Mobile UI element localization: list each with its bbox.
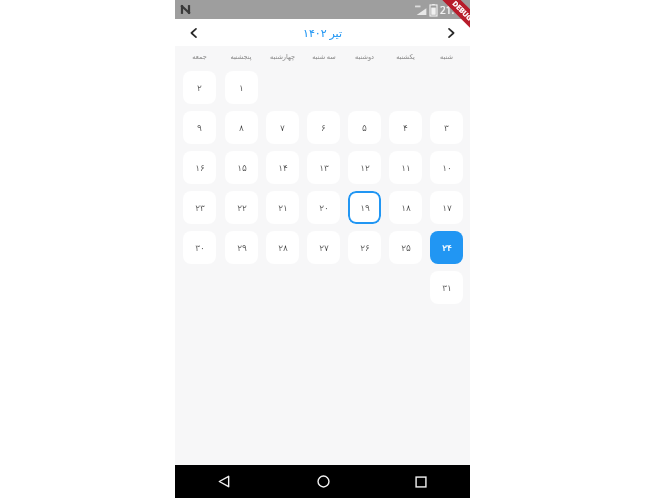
- button[interactable]: ۲۱: [266, 191, 299, 224]
- button[interactable]: ۲۵: [389, 231, 422, 264]
- button[interactable]: ۲۹: [225, 231, 258, 264]
- button[interactable]: ۳۱: [430, 271, 463, 304]
- staticText: ۷: [280, 123, 285, 133]
- button[interactable]: ۱۶: [183, 151, 216, 184]
- button[interactable]: ۸: [225, 111, 258, 144]
- staticText: ۱۳: [319, 163, 329, 173]
- button[interactable]: Previous month: [183, 22, 205, 44]
- staticText: ۱۷: [442, 203, 452, 213]
- button[interactable]: ۱۸: [389, 191, 422, 224]
- button[interactable]: Home: [274, 465, 372, 498]
- staticText: ۱۰: [442, 163, 452, 173]
- staticText: یکشنبه: [396, 53, 415, 61]
- button[interactable]: ۱۷: [430, 191, 463, 224]
- staticText: ۶: [321, 123, 326, 133]
- staticText: ۲۴: [442, 243, 452, 253]
- staticText: ۱۶: [195, 163, 205, 173]
- button[interactable]: ۶: [307, 111, 340, 144]
- button[interactable]: Next month: [440, 22, 462, 44]
- button[interactable]: ۴: [389, 111, 422, 144]
- button[interactable]: ۲۳: [183, 191, 216, 224]
- staticText: ۲۵: [401, 243, 411, 253]
- staticText: ۱: [239, 83, 244, 93]
- button[interactable]: ۳۰: [183, 231, 216, 264]
- button[interactable]: ۱۴: [266, 151, 299, 184]
- button[interactable]: ۱۲: [348, 151, 381, 184]
- button[interactable]: ۲۴: [430, 231, 463, 264]
- button[interactable]: ۲۶: [348, 231, 381, 264]
- staticText: ۲۹: [237, 243, 247, 253]
- staticText: ۲۰: [319, 203, 329, 213]
- button[interactable]: ۱۹: [348, 191, 381, 224]
- button[interactable]: ۵: [348, 111, 381, 144]
- staticText: 21:40: [440, 3, 466, 17]
- staticText: ۳۰: [195, 243, 205, 253]
- button[interactable]: ۱۱: [389, 151, 422, 184]
- staticText: ۱۹: [360, 203, 370, 213]
- staticText: ۲۸: [278, 243, 288, 253]
- staticText: ۳: [444, 123, 449, 133]
- staticText: ۲۲: [237, 203, 247, 213]
- staticText: ۸: [239, 123, 244, 133]
- button[interactable]: ۲: [183, 71, 216, 104]
- staticText: تیر ۱۴۰۲: [303, 25, 342, 40]
- staticText: ۲: [197, 83, 202, 93]
- button[interactable]: ۷: [266, 111, 299, 144]
- staticText: ۱۲: [360, 163, 370, 173]
- button[interactable]: ۲۰: [307, 191, 340, 224]
- staticText: ۲۳: [195, 203, 205, 213]
- button[interactable]: ۱: [225, 71, 258, 104]
- staticText: ۹: [197, 123, 202, 133]
- button[interactable]: ۲۷: [307, 231, 340, 264]
- staticText: پنجشنبه: [230, 53, 252, 61]
- staticText: ۳۱: [442, 283, 452, 293]
- staticText: شنبه: [440, 53, 453, 61]
- staticText: دوشنبه: [355, 53, 374, 61]
- button[interactable]: Back: [175, 465, 274, 498]
- button[interactable]: ۳: [430, 111, 463, 144]
- staticText: جمعه: [192, 53, 207, 61]
- staticText: ۵: [362, 123, 367, 133]
- staticText: سه شنبه: [312, 52, 336, 61]
- staticText: ۲۱: [278, 203, 288, 213]
- button[interactable]: ۹: [183, 111, 216, 144]
- staticText: DEBUG: [450, 0, 470, 24]
- button[interactable]: Recent apps: [372, 465, 470, 498]
- button[interactable]: تیر ۱۴۰۲: [303, 25, 342, 40]
- staticText: ۲۶: [360, 243, 370, 253]
- staticText: ۱۸: [401, 203, 411, 213]
- staticText: ۲۷: [319, 243, 329, 253]
- button[interactable]: ۱۰: [430, 151, 463, 184]
- button[interactable]: ۲۲: [225, 191, 258, 224]
- staticText: ۱۱: [401, 163, 411, 173]
- staticText: ۱۵: [237, 163, 247, 173]
- staticText: ۱۴: [278, 163, 288, 173]
- button[interactable]: ۱۳: [307, 151, 340, 184]
- button[interactable]: ۱۵: [225, 151, 258, 184]
- button[interactable]: ۲۸: [266, 231, 299, 264]
- staticText: ۴: [403, 123, 408, 133]
- staticText: چهارشنبه: [270, 53, 295, 61]
